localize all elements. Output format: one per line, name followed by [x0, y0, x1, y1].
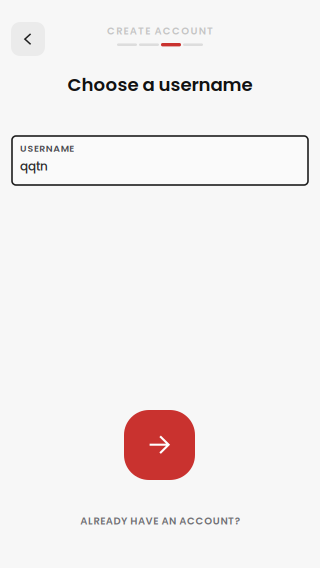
staticText: N [199, 24, 206, 38]
staticText: A [155, 24, 162, 38]
staticText: A [161, 514, 168, 528]
staticText: A [53, 142, 60, 155]
staticText: S [27, 142, 33, 155]
staticText: R [116, 24, 122, 38]
staticText: A [80, 514, 87, 528]
staticText: R [93, 514, 99, 528]
staticText: N [46, 142, 53, 155]
staticText: O [204, 514, 212, 528]
staticText: C [196, 514, 204, 528]
staticText: E [34, 142, 39, 155]
staticText: T [138, 24, 144, 38]
staticText: E [153, 514, 158, 528]
staticText: T [228, 514, 234, 528]
staticText: A [130, 24, 137, 38]
staticText: M [61, 142, 69, 155]
button[interactable]: Back [11, 22, 45, 56]
staticText: L [88, 514, 93, 528]
staticText: ? [235, 514, 240, 528]
staticText: U [213, 514, 220, 528]
staticText: U [20, 142, 27, 155]
staticText: C [187, 514, 195, 528]
staticText: C [172, 24, 180, 38]
staticText: U [190, 24, 197, 38]
staticText: E [100, 514, 105, 528]
staticText: T [207, 24, 213, 38]
staticText: N [169, 514, 176, 528]
staticText: qqtn [20, 158, 48, 175]
staticText: C [107, 24, 115, 38]
staticText: D [113, 514, 120, 528]
staticText: E [69, 142, 74, 155]
staticText: C [163, 24, 171, 38]
staticText: A [179, 514, 186, 528]
staticText: V [146, 514, 153, 528]
staticText: O [181, 24, 189, 38]
staticText: H [130, 514, 137, 528]
staticText: Y [121, 514, 127, 528]
button[interactable]: Continue [124, 410, 195, 480]
staticText: Choose a username [67, 72, 252, 97]
staticText: R [39, 142, 45, 155]
button[interactable]: A [60, 508, 260, 534]
staticText: A [138, 514, 145, 528]
staticText: N [220, 514, 227, 528]
staticText: E [123, 24, 128, 38]
staticText: E [145, 24, 150, 38]
staticText: A [106, 514, 113, 528]
